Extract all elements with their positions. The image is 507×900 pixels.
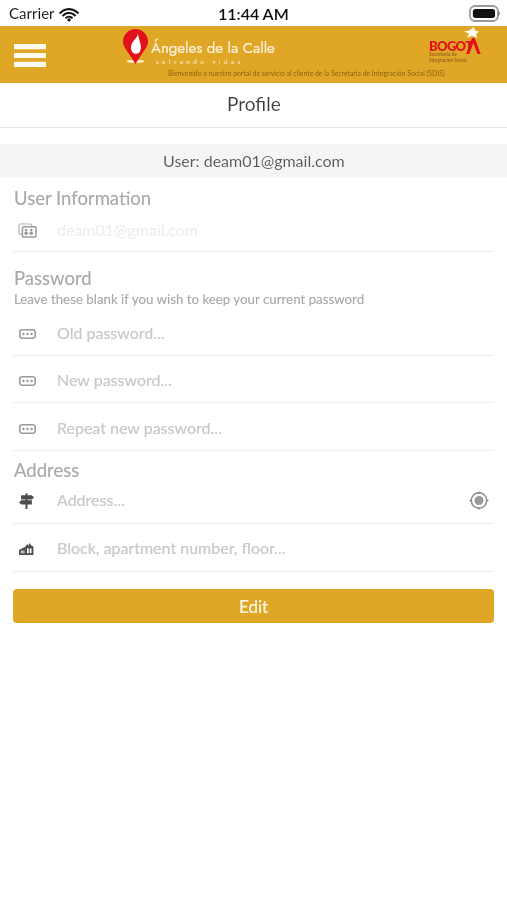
staticText: Ángeles de la Calle: [151, 37, 275, 59]
button[interactable]: Repeat new password...: [0, 403, 507, 451]
staticText: Block, apartment number, floor...: [57, 538, 286, 557]
staticText: User: deam01@gmail.com: [163, 151, 345, 170]
staticText: Leave these blank if you wish to keep yo…: [14, 291, 365, 307]
staticText: New password...: [57, 370, 172, 389]
staticText: Bienvenido a nuestro portal de servicio …: [168, 69, 445, 77]
staticText: Edit: [239, 596, 269, 616]
button[interactable]: New password...: [0, 355, 507, 403]
button[interactable]: Open navigation menu: [5, 35, 54, 75]
staticText: Repeat new password...: [57, 418, 222, 437]
button[interactable]: Address...: [0, 476, 507, 524]
staticText: Profile: [227, 92, 281, 115]
button[interactable]: deam01@gmail.com: [0, 207, 507, 252]
button[interactable]: Use current location: [469, 490, 489, 510]
staticText: User Information: [14, 187, 152, 209]
staticText: Address: [14, 459, 80, 481]
staticText: 11:44 AM: [218, 4, 289, 23]
staticText: Carrier: [9, 4, 55, 22]
button[interactable]: Edit: [13, 589, 494, 623]
staticText: deam01@gmail.com: [57, 220, 199, 239]
staticText: salvando vidas: [156, 57, 244, 66]
button[interactable]: Old password...: [0, 307, 507, 356]
staticText: Secretaría de Integración Social: [429, 51, 467, 63]
button[interactable]: Block, apartment number, floor...: [0, 524, 507, 572]
staticText: Address...: [57, 490, 125, 509]
staticText: BOGOT: [429, 38, 473, 54]
staticText: Old password...: [57, 323, 165, 342]
staticText: Password: [14, 267, 92, 289]
